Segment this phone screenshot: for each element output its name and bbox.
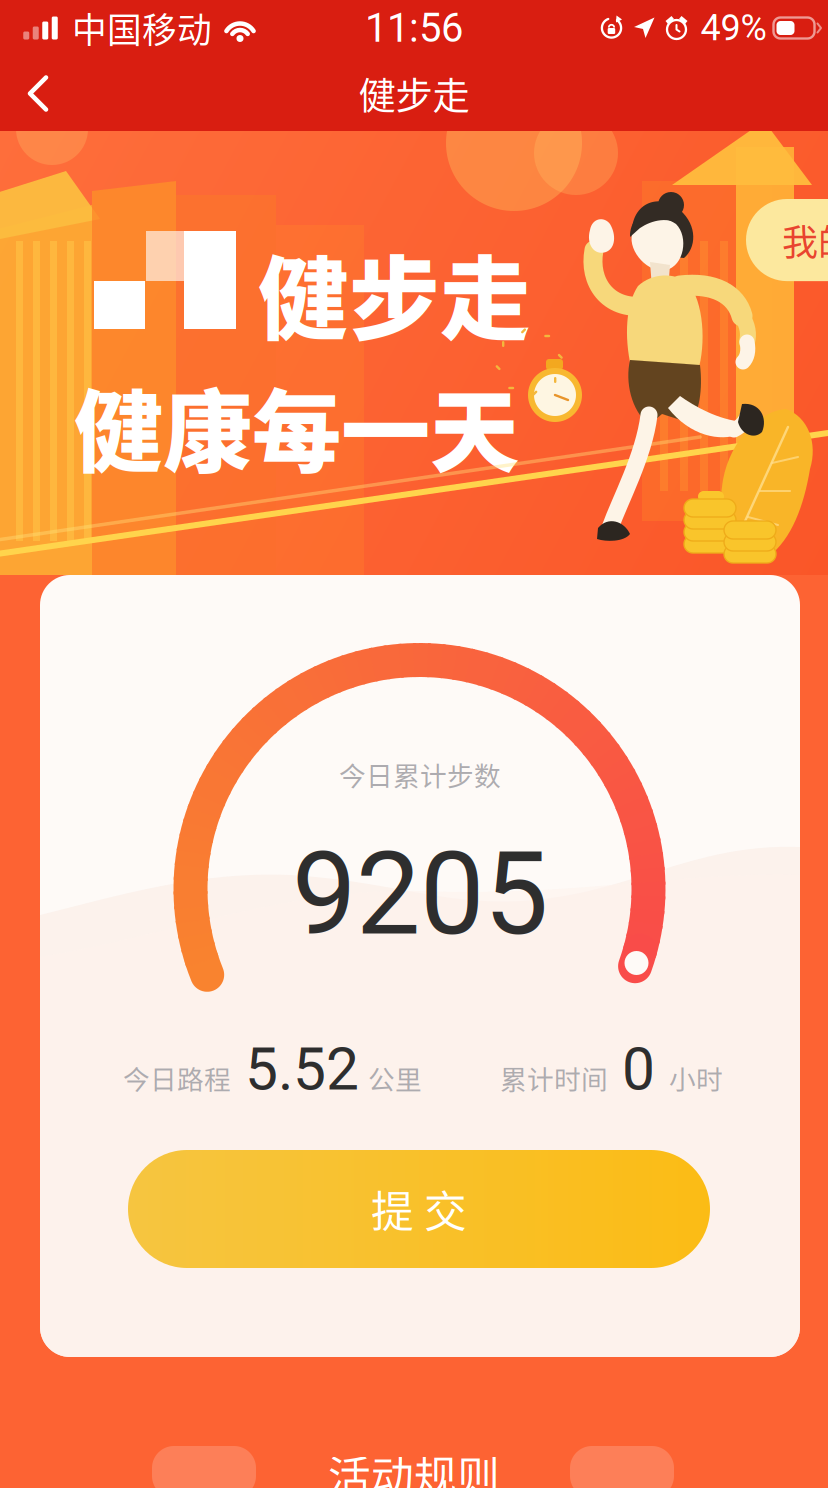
staticText: 累计时间 [500,1058,608,1097]
staticText: 健步走 [358,66,469,121]
button[interactable]: Back [0,56,76,130]
button[interactable]: 我的活动 [746,199,828,281]
staticText: 活动规则 [328,1443,500,1488]
staticText: 健步走 [258,227,531,358]
button[interactable]: 提 交 [128,1150,710,1268]
staticText: 今日累计步数 [339,755,501,794]
staticText: 健康每一天 [74,361,519,490]
staticText: 今日路程 [123,1058,231,1097]
staticText: 中国移动 [72,3,212,53]
staticText: 9205 [292,827,548,961]
staticText: 我的活动 [782,214,828,266]
staticText: 小时 [669,1058,723,1097]
staticText: 0 [622,1035,655,1104]
staticText: 11:56 [365,5,463,51]
staticText: 公里 [368,1058,422,1097]
button[interactable]: 活动规则 [0,1443,828,1488]
staticText: 提 交 [371,1178,467,1240]
staticText: 49% [700,7,766,49]
staticText: 5.52 [245,1035,359,1104]
